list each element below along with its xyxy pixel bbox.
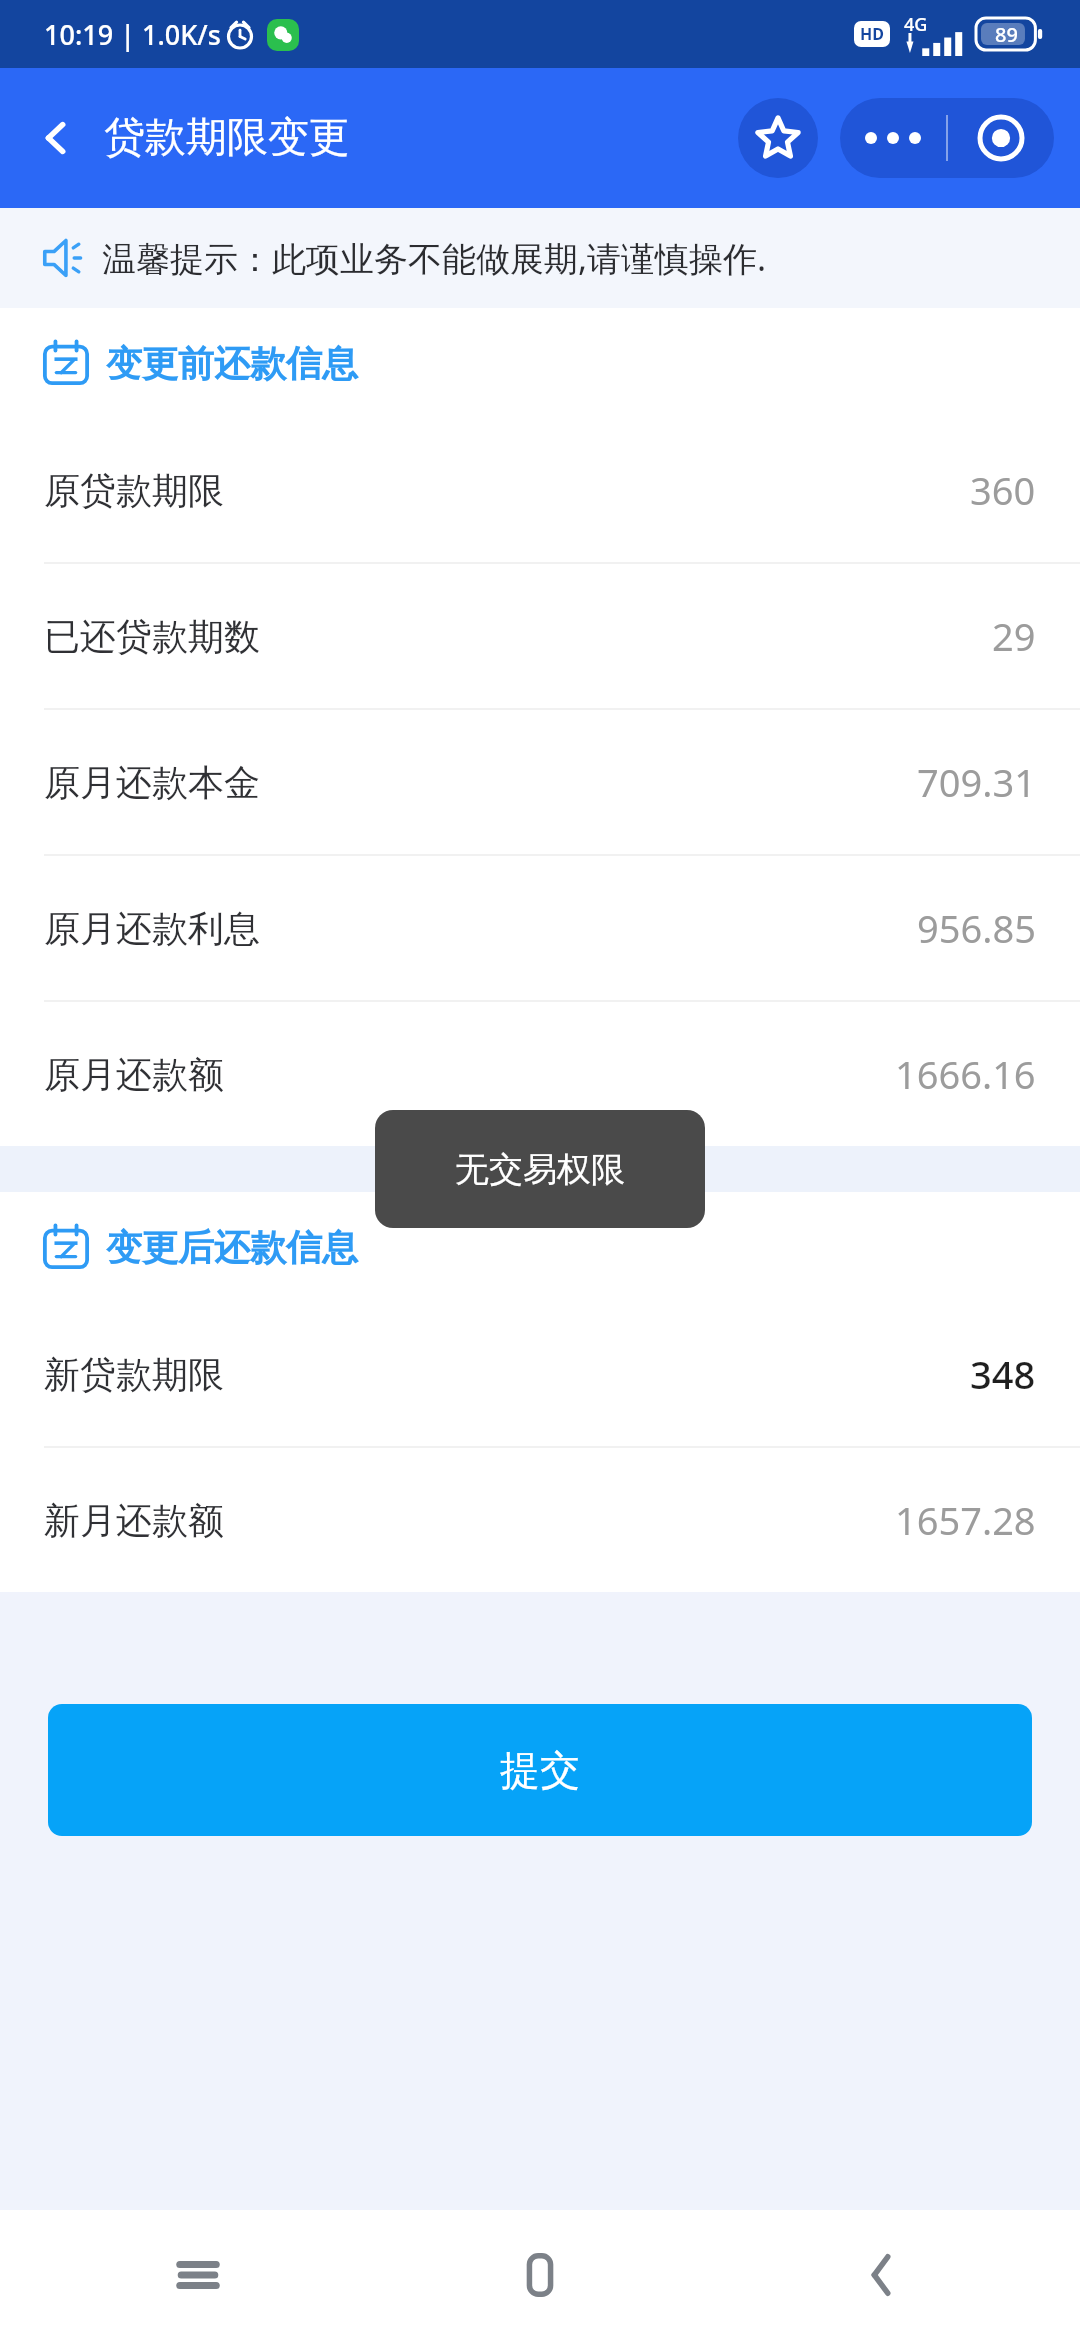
button[interactable]: 新月还款额 [0,1448,1080,1592]
staticText: 原贷款期限 [44,468,224,513]
button[interactable]: 收藏 [738,98,818,178]
button[interactable]: 原月还款额 [0,1002,1080,1146]
staticText: 360 [970,464,1036,516]
staticText: 已还贷款期数 [44,614,260,659]
button[interactable]: 原月还款利息 [0,856,1080,1002]
button[interactable]: 更多 [840,98,946,178]
button[interactable]: 关闭 [948,98,1054,178]
staticText: 原月还款利息 [44,906,260,951]
staticText: 709.31 [917,756,1036,808]
staticText: HD [860,23,884,45]
staticText: 1657.28 [895,1494,1036,1546]
staticText: 无交易权限 [455,1148,625,1191]
button[interactable]: 原贷款期限 [0,418,1080,564]
staticText: 1666.16 [895,1048,1036,1100]
button[interactable]: 新贷款期限 [0,1302,1080,1448]
button[interactable]: 返回 [834,2227,930,2323]
staticText: 变更前还款信息 [106,341,358,386]
staticText: 原月还款额 [44,1052,224,1097]
staticText: 原月还款本金 [44,760,260,805]
staticText: 348 [970,1348,1036,1400]
button[interactable]: 提交 [48,1704,1032,1836]
button[interactable]: 原月还款本金 [0,710,1080,856]
staticText: 温馨提示：此项业务不能做展期,请谨慎操作. [102,235,767,281]
staticText: 956.85 [917,902,1036,954]
button[interactable]: 返回 [20,102,92,174]
staticText: 新贷款期限 [44,1352,224,1397]
staticText: 提交 [500,1745,580,1795]
staticText: 贷款期限变更 [104,112,350,164]
button[interactable]: 主屏幕 [492,2227,588,2323]
button[interactable]: 最近任务 [150,2227,246,2323]
button[interactable]: 已还贷款期数 [0,564,1080,710]
staticText: 变更后还款信息 [106,1225,358,1270]
staticText: 89 [995,21,1018,48]
staticText: 10:19 | 1.0K/s [44,16,221,53]
staticText: 4G [904,12,928,37]
staticText: 新月还款额 [44,1498,224,1543]
staticText: 29 [992,610,1036,662]
